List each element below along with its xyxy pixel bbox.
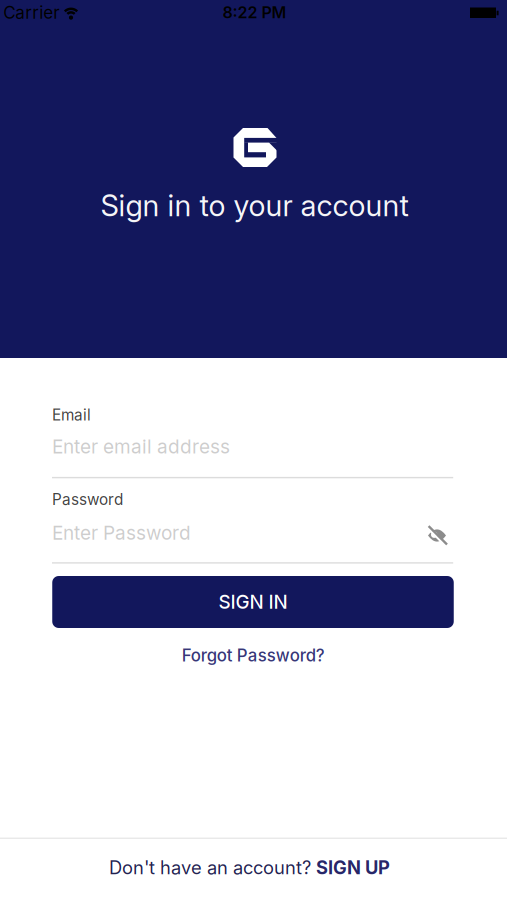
- staticText: 8:22 PM: [223, 3, 287, 22]
- button[interactable]: Show password: [424, 522, 450, 546]
- button[interactable]: SIGN IN: [52, 576, 454, 628]
- staticText: SIGN UP: [316, 856, 390, 878]
- button[interactable]: Enter email address: [52, 427, 453, 467]
- staticText: Password: [52, 490, 123, 509]
- staticText: Enter Password: [52, 521, 191, 544]
- staticText: Don't have an account?: [109, 856, 311, 878]
- staticText: Carrier: [3, 2, 59, 23]
- button[interactable]: Forgot Password?: [182, 645, 325, 665]
- staticText: Enter email address: [52, 435, 230, 458]
- staticText: SIGN IN: [218, 591, 287, 613]
- button[interactable]: Enter Password: [52, 513, 453, 553]
- staticText: Sign in to your account: [100, 188, 408, 223]
- staticText: Email: [52, 406, 91, 424]
- staticText: Forgot Password?: [182, 645, 325, 665]
- button[interactable]: SIGN UP: [316, 856, 390, 878]
